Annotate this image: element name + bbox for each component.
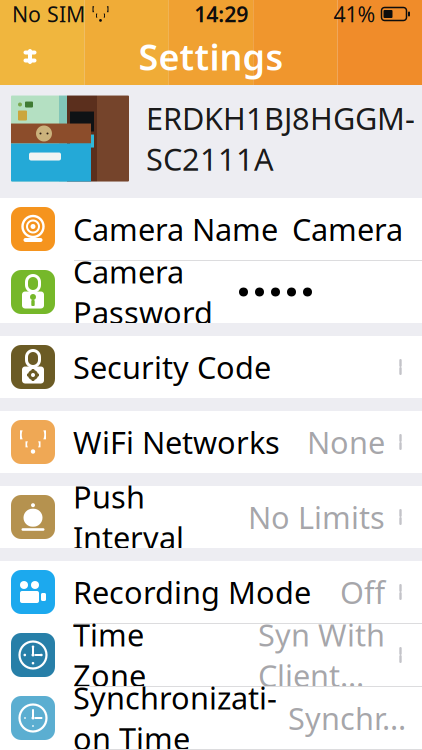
button[interactable]: WiFi Networks [0,411,422,473]
staticText: Syn With Client... [258,614,385,696]
staticText: ERDKH1BJ8HGGMSC2111A [146,98,415,179]
button[interactable]: Synchronization Time [0,687,422,749]
staticText: Push Interval [73,476,184,558]
staticText: WiFi Networks [73,422,280,462]
button[interactable]: Security Code [0,336,422,398]
staticText: Camera [292,209,403,249]
staticText: Settings [138,33,283,80]
staticText: Synchronization Time [73,677,277,750]
button[interactable]: ERDKH1BJ8HGGMSC2111A [0,85,422,192]
staticText: 41% [333,0,375,28]
staticText: No Limits [248,497,385,537]
button[interactable]: Camera Password [0,261,422,323]
button[interactable]: Time Zone [0,624,422,686]
button[interactable]: Back [8,34,52,78]
staticText: Camera Password [73,251,213,333]
staticText: None [307,422,385,462]
staticText: Synchr... [288,698,406,738]
staticText: Recording Mode [73,572,311,612]
staticText: Camera Name [73,209,278,249]
button[interactable]: Camera Name [0,198,422,260]
staticText: Time Zone [73,614,146,696]
button[interactable]: Push Interval [0,486,422,548]
staticText: 14:29 [194,0,248,28]
staticText: Security Code [73,347,271,387]
staticText: No SIM [12,0,85,28]
staticText: Off [340,572,385,612]
button[interactable]: Recording Mode [0,561,422,623]
